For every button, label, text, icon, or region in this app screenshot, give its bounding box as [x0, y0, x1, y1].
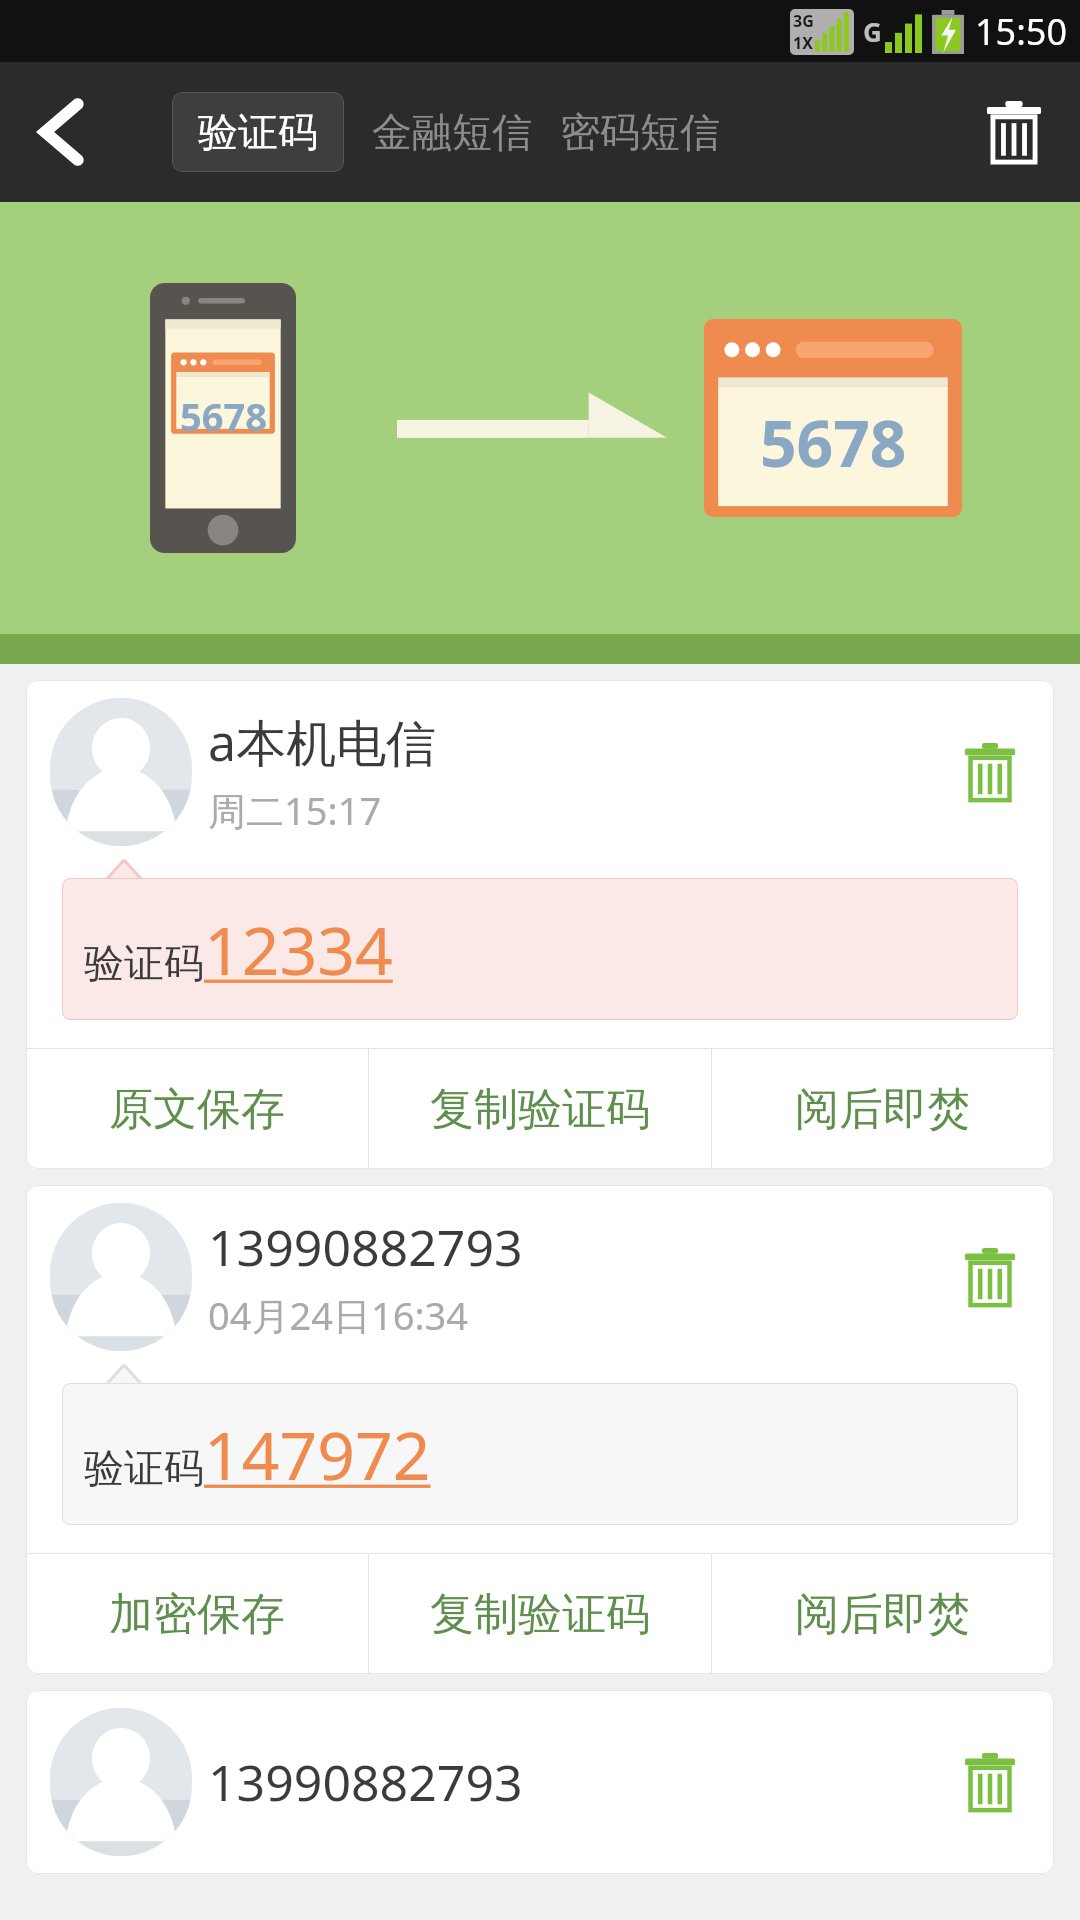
staticText: 验证码 [84, 1443, 204, 1493]
button[interactable]: 加密保存 [26, 1554, 368, 1674]
button[interactable]: 阅后即焚 [712, 1049, 1054, 1169]
button[interactable]: 原文保存 [26, 1049, 368, 1169]
staticText: 周二15:17 [208, 784, 382, 836]
staticText: 验证码 [198, 107, 318, 157]
button[interactable]: 验证码 [172, 92, 344, 172]
staticText: G [863, 14, 882, 49]
staticText: 验证码 [84, 938, 204, 988]
button[interactable]: Delete message [950, 1237, 1030, 1317]
button[interactable]: 13990882793 [26, 1185, 1054, 1674]
button[interactable]: 13990882793 [26, 1690, 1054, 1874]
staticText: 阅后即焚 [795, 1082, 971, 1137]
button[interactable]: 金融短信 [344, 92, 544, 172]
staticText: 3G [793, 10, 814, 32]
staticText: 金融短信 [372, 107, 532, 157]
button[interactable]: a本机电信 [26, 680, 1054, 1169]
staticText: 13990882793 [208, 1748, 523, 1816]
staticText: 5678 [760, 399, 907, 486]
staticText: 13990882793 [208, 1213, 523, 1281]
staticText: 原文保存 [109, 1082, 285, 1137]
button[interactable]: Delete message [950, 732, 1030, 812]
staticText: 15:50 [975, 7, 1068, 56]
staticText: 复制验证码 [430, 1082, 650, 1137]
button[interactable]: 密码短信 [544, 92, 732, 172]
staticText: 阅后即焚 [795, 1587, 971, 1642]
staticText: 1X [793, 32, 813, 54]
staticText: 密码短信 [560, 107, 720, 157]
button[interactable]: Back [16, 87, 106, 177]
button[interactable]: 复制验证码 [369, 1049, 711, 1169]
staticText: 5678 [180, 390, 267, 442]
staticText: 12334 [204, 904, 393, 994]
staticText: 加密保存 [109, 1587, 285, 1642]
staticText: 复制验证码 [430, 1587, 650, 1642]
button[interactable]: 复制验证码 [369, 1554, 711, 1674]
staticText: 04月24日16:34 [208, 1289, 469, 1341]
staticText: 147972 [204, 1409, 431, 1499]
button[interactable]: Delete all [968, 86, 1060, 178]
button[interactable]: 阅后即焚 [712, 1554, 1054, 1674]
staticText: a本机电信 [208, 708, 437, 776]
button[interactable]: Delete message [950, 1742, 1030, 1822]
